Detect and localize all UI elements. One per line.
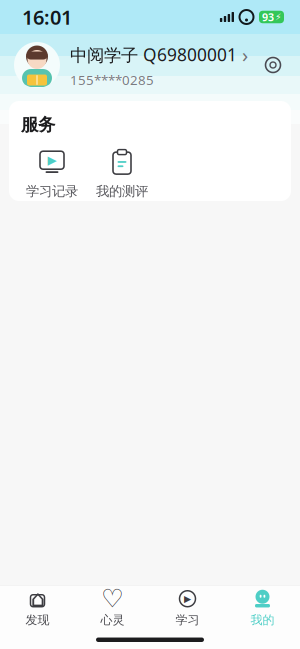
- staticText: ▶: [184, 593, 191, 604]
- button[interactable]: ▶: [17, 149, 87, 199]
- staticText: 中阅学子 Q69800001: [70, 43, 237, 66]
- staticText: 心灵: [100, 613, 124, 627]
- button[interactable]: ⌂: [0, 586, 75, 631]
- staticText: ▶: [47, 153, 56, 167]
- button[interactable]: ▶: [150, 586, 225, 631]
- staticText: 学习记录: [26, 183, 78, 199]
- staticText: ⌂: [30, 586, 44, 612]
- button[interactable]: Settings: [258, 50, 288, 80]
- staticText: 服务: [21, 114, 55, 135]
- button[interactable]: 我的: [225, 586, 300, 631]
- staticText: ♡: [101, 584, 124, 613]
- button[interactable]: 中阅学子 Q69800001: [14, 41, 248, 89]
- staticText: 我的测评: [96, 183, 148, 199]
- staticText: 155****0285: [70, 71, 154, 89]
- staticText: 发现: [25, 613, 49, 627]
- staticText: 93: [262, 10, 274, 24]
- staticText: 学习: [175, 613, 199, 627]
- staticText: 我的: [250, 613, 274, 627]
- staticText: 16:01: [22, 4, 72, 30]
- staticText: ⚡︎: [275, 12, 282, 22]
- button[interactable]: 我的测评: [87, 149, 157, 199]
- button[interactable]: ♡: [75, 586, 150, 631]
- staticText: ›: [242, 41, 248, 68]
